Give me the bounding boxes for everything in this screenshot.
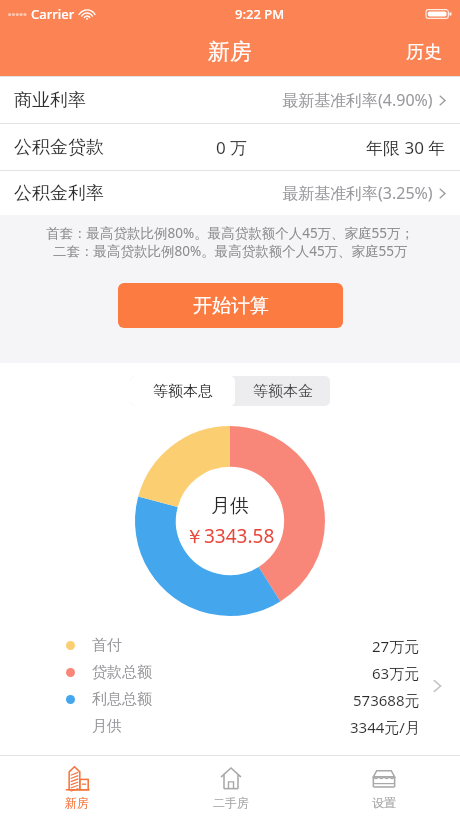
button[interactable]: 开始计算 — [118, 283, 343, 328]
staticText: 573688元 — [353, 690, 420, 710]
staticText: ￥3343.58 — [185, 523, 275, 549]
staticText: 贷款总额 — [92, 663, 152, 682]
staticText: 9:22 PM — [235, 5, 285, 23]
staticText: 商业利率 — [14, 89, 86, 112]
staticText: 首付 — [92, 636, 122, 655]
staticText: 公积金贷款 — [14, 136, 104, 159]
staticText: 二手房 — [213, 795, 249, 810]
staticText: 二套：最高贷款比例80%。最高贷款额个人45万、家庭55万 — [53, 242, 408, 260]
staticText: 月供 — [92, 717, 122, 736]
staticText: 开始计算 — [193, 294, 269, 318]
button[interactable]: 公积金贷款 — [0, 124, 460, 170]
staticText: 63万元 — [372, 663, 420, 683]
button[interactable]: 新房 — [0, 756, 154, 818]
staticText: 历史 — [406, 41, 442, 64]
staticText: 新房 — [65, 795, 89, 810]
staticText: 0 万 — [216, 136, 248, 159]
staticText: 公积金利率 — [14, 182, 104, 205]
button[interactable]: 等额本息 — [130, 376, 235, 406]
button[interactable]: 历史 — [388, 31, 460, 74]
staticText: 设置 — [372, 795, 396, 810]
staticText: 首套：最高贷款比例80%。最高贷款额个人45万、家庭55万； — [46, 224, 415, 242]
staticText: 27万元 — [372, 636, 420, 656]
button[interactable]: 公积金利率 — [0, 171, 460, 215]
staticText: 等额本息 — [153, 382, 213, 401]
staticText: Carrier — [31, 5, 75, 23]
staticText: 年限 30 年 — [366, 136, 446, 159]
button[interactable]: 首付 — [0, 632, 460, 740]
button[interactable]: 二手房 — [154, 756, 307, 818]
staticText: 最新基准利率(3.25%) — [282, 182, 433, 204]
staticText: 等额本金 — [253, 382, 313, 401]
button[interactable]: 等额本金 — [235, 376, 330, 406]
button[interactable]: 设置 — [307, 756, 460, 818]
staticText: 利息总额 — [92, 690, 152, 709]
staticText: 新房 — [208, 38, 252, 66]
staticText: 3344元/月 — [350, 717, 420, 737]
staticText: 月供 — [211, 494, 249, 518]
button[interactable]: 商业利率 — [0, 77, 460, 123]
staticText: 最新基准利率(4.90%) — [282, 89, 433, 111]
